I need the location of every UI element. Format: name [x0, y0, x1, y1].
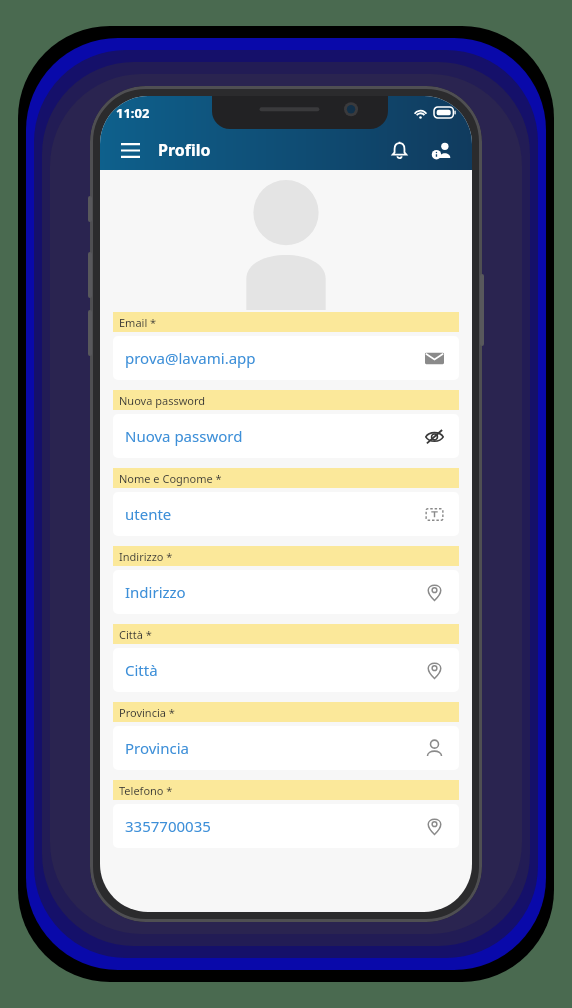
staticText: Indirizzo * [119, 549, 173, 564]
button[interactable]: utente [113, 492, 459, 536]
staticText: Provincia * [119, 705, 175, 720]
button[interactable]: 3357700035 [113, 804, 459, 848]
staticText: Città * [119, 627, 152, 642]
staticText: Nuova password [125, 426, 421, 446]
button[interactable]: Telefono * [421, 813, 447, 839]
staticText: Telefono * [119, 783, 173, 798]
staticText: Indirizzo [125, 582, 421, 602]
staticText: prova@lavami.app [125, 348, 421, 368]
button[interactable]: Nome e Cognome * [421, 501, 447, 527]
button[interactable]: prova@lavami.app [113, 336, 459, 380]
button[interactable]: Città [113, 648, 459, 692]
staticText: 3357700035 [125, 816, 421, 836]
button[interactable]: Indirizzo * [421, 579, 447, 605]
button[interactable]: Città * [421, 657, 447, 683]
staticText: utente [125, 504, 421, 524]
button[interactable]: Notifiche [380, 131, 418, 169]
staticText: Email * [119, 315, 157, 330]
staticText: Profilo [158, 139, 211, 161]
button[interactable]: Account [422, 131, 460, 169]
button[interactable]: Menu [112, 132, 148, 168]
staticText: Provincia [125, 738, 421, 758]
staticText: 11:02 [116, 104, 150, 122]
button[interactable]: Provincia [113, 726, 459, 770]
button[interactable]: Provincia * [421, 735, 447, 761]
staticText: Nuova password [119, 393, 206, 408]
button[interactable]: Email * [421, 345, 447, 371]
staticText: Nome e Cognome * [119, 471, 222, 486]
button[interactable]: Nuova password [421, 423, 447, 449]
staticText: Città [125, 660, 421, 680]
button[interactable]: Indirizzo [113, 570, 459, 614]
button[interactable]: Nuova password [113, 414, 459, 458]
